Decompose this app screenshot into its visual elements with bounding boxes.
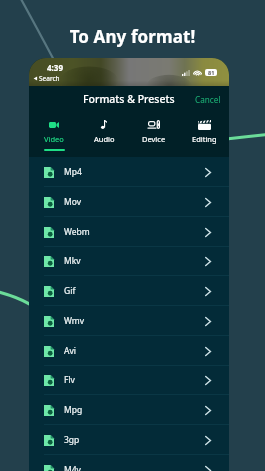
staticText: Video xyxy=(44,134,64,144)
staticText: Mpg xyxy=(64,404,83,416)
button[interactable]: Mov xyxy=(29,187,229,217)
staticText: Device xyxy=(142,134,166,144)
staticText: Webm xyxy=(64,226,90,238)
staticText: Audio xyxy=(94,134,115,144)
button[interactable]: Flv xyxy=(29,365,229,395)
staticText: Mp4 xyxy=(64,166,82,178)
staticText: Mov xyxy=(64,196,82,208)
staticText: Gif xyxy=(64,285,76,297)
button[interactable]: Webm xyxy=(29,217,229,247)
button[interactable]: Avi xyxy=(29,336,229,366)
staticText: Wmv xyxy=(64,315,85,327)
button[interactable]: Audio xyxy=(79,112,129,157)
staticText: 81 xyxy=(208,69,215,76)
button[interactable]: Mp4 xyxy=(29,157,229,187)
button[interactable]: Editing xyxy=(179,112,229,157)
staticText: 4:39 xyxy=(47,62,63,73)
button[interactable]: M4v xyxy=(29,455,229,471)
button[interactable]: Cancel xyxy=(187,89,229,110)
button[interactable]: 3gp xyxy=(29,425,229,455)
staticText: M4v xyxy=(64,464,81,471)
button[interactable]: Wmv xyxy=(29,306,229,336)
button[interactable]: Device xyxy=(129,112,179,157)
staticText: Search xyxy=(39,74,60,83)
staticText: Flv xyxy=(64,374,75,386)
button[interactable]: Mkv xyxy=(29,246,229,276)
staticText: To Any format! xyxy=(0,25,265,48)
button[interactable]: Video xyxy=(29,112,79,157)
staticText: 3gp xyxy=(64,434,80,446)
staticText: Mkv xyxy=(64,255,81,267)
staticText: Formats & Presets xyxy=(83,92,175,106)
staticText: Editing xyxy=(192,134,217,144)
staticText: Avi xyxy=(64,345,76,357)
button[interactable]: Gif xyxy=(29,276,229,306)
button[interactable]: Mpg xyxy=(29,395,229,425)
